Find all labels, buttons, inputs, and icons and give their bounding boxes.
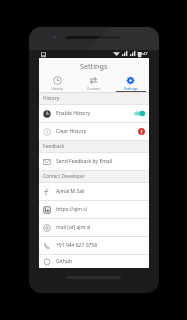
staticText: Settings (124, 86, 138, 91)
staticText: Convert (87, 86, 101, 91)
button[interactable]: Enable History (39, 105, 149, 122)
staticText: History (43, 95, 60, 102)
button[interactable]: mail [at] ajm.sl (39, 219, 149, 236)
staticText: 23:47 (137, 51, 148, 57)
button[interactable]: Convert (75, 73, 112, 92)
staticText: Settings (80, 61, 108, 71)
button[interactable]: Send Feedback by Email (39, 153, 149, 170)
staticText: History (51, 86, 64, 91)
staticText: Ajmal M Sali (56, 188, 145, 195)
button[interactable]: Github (39, 255, 149, 268)
button[interactable]: +91 944 627 0758 (39, 237, 149, 254)
staticText: https://ajm.sl (56, 206, 145, 213)
button[interactable]: History (39, 73, 75, 92)
button[interactable]: https://ajm.sl (39, 201, 149, 218)
staticText: Contact Developer (43, 173, 85, 180)
staticText: Clear History (56, 128, 138, 135)
staticText: mail [at] ajm.sl (56, 224, 145, 231)
staticText: Send Feedback by Email (56, 158, 145, 165)
staticText: Github (56, 258, 145, 265)
button[interactable]: Ajmal M Sali (39, 183, 149, 200)
button[interactable]: Settings (112, 73, 149, 92)
staticText: Feedback (43, 143, 65, 150)
staticText: Enable History (56, 110, 134, 117)
staticText: +91 944 627 0758 (56, 242, 145, 249)
button[interactable]: Clear History (39, 123, 149, 140)
